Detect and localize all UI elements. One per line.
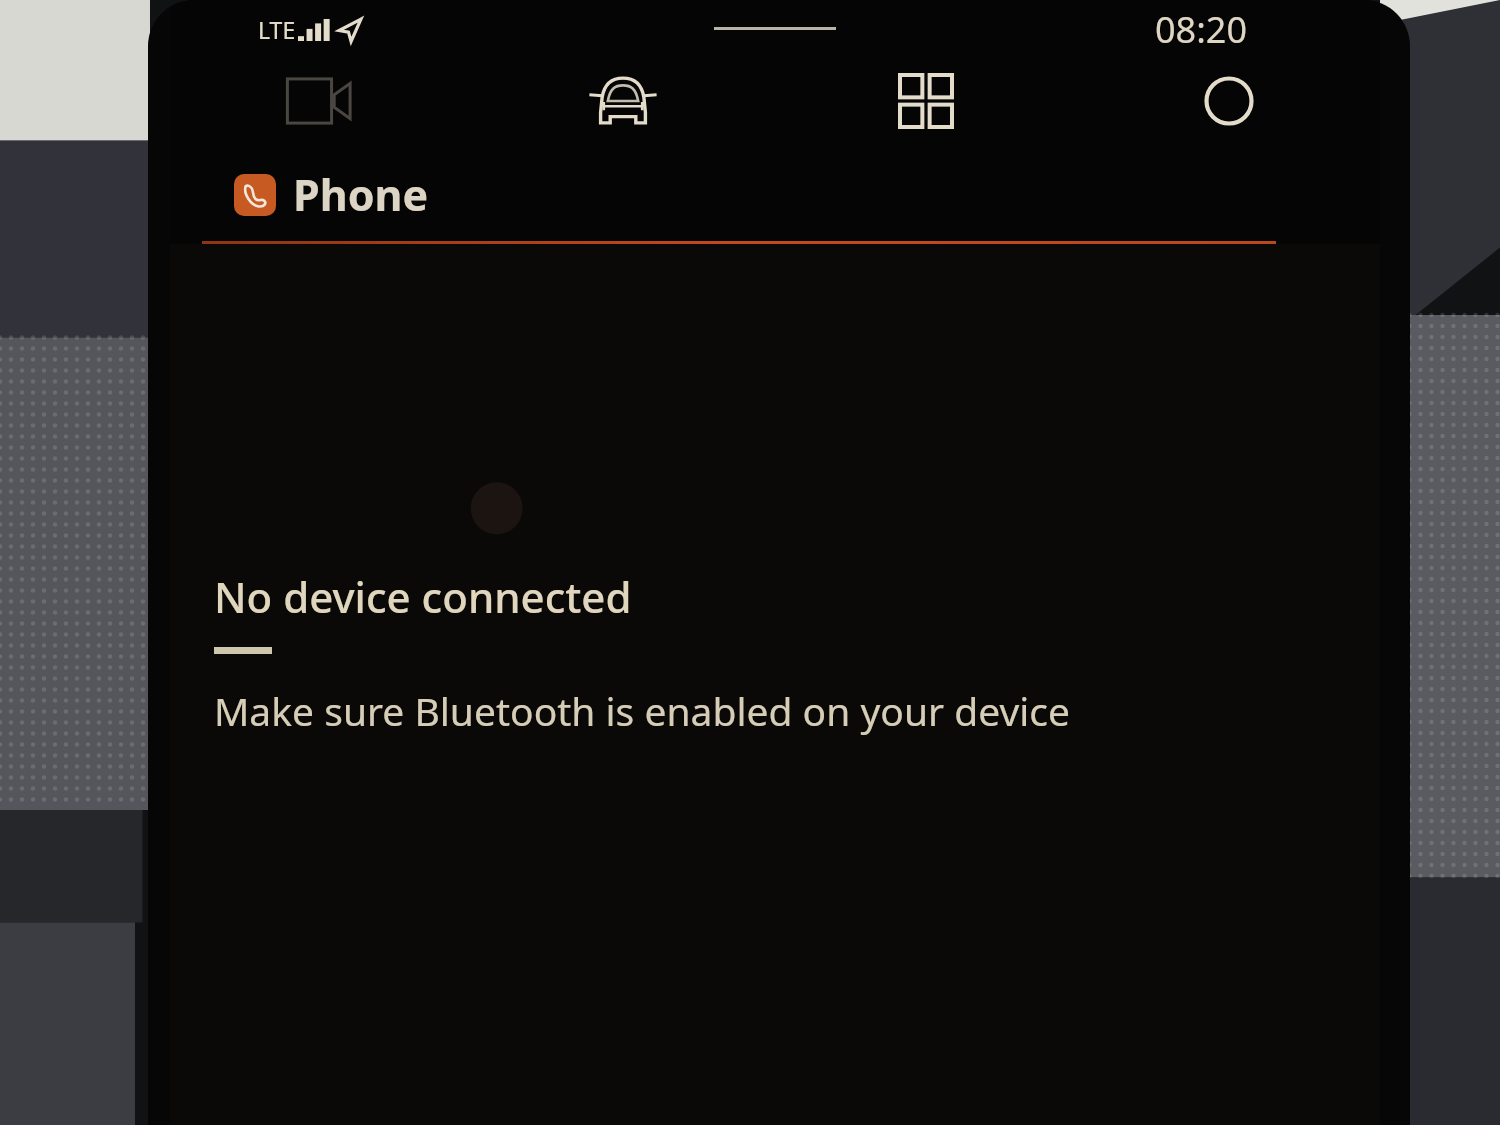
staticText: No device connected	[214, 568, 632, 625]
staticText: Make sure Bluetooth is enabled on your d…	[214, 684, 1071, 737]
staticText: 08:20	[1155, 5, 1248, 54]
staticText: LTE	[258, 14, 296, 45]
button[interactable]: Media	[170, 58, 472, 144]
button[interactable]: Home	[1077, 58, 1380, 144]
button[interactable]: Phone	[234, 165, 429, 224]
staticText: Phone	[293, 165, 429, 224]
button[interactable]: Apps	[774, 58, 1077, 144]
button[interactable]: Vehicle	[472, 58, 774, 144]
